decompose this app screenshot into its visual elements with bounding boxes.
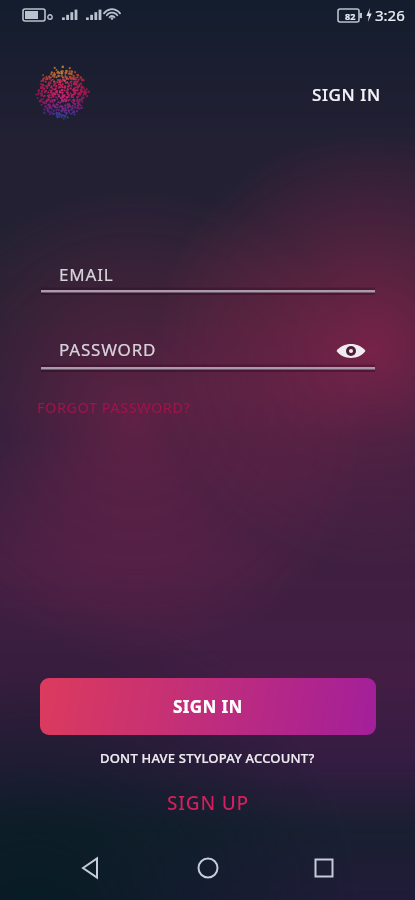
staticText: SIGN IN — [312, 83, 381, 106]
staticText: FORGOT PASSWORD? — [37, 397, 191, 417]
button[interactable]: PASSWORD — [41, 335, 375, 367]
staticText: 3:26 — [375, 5, 405, 25]
button[interactable]: EMAIL — [41, 260, 375, 292]
staticText: 82 — [345, 10, 356, 22]
button[interactable]: Recent apps — [299, 843, 349, 893]
staticText: PASSWORD — [59, 338, 157, 361]
button[interactable]: SIGN IN — [40, 678, 376, 735]
staticText: EMAIL — [59, 263, 114, 286]
button[interactable]: FORGOT PASSWORD? — [37, 397, 191, 417]
staticText: SIGN IN — [173, 695, 243, 718]
button[interactable]: SIGN UP — [167, 790, 249, 816]
staticText: DONT HAVE STYLOPAY ACCOUNT? — [100, 749, 315, 767]
button[interactable]: Home — [183, 843, 233, 893]
button[interactable]: Show password — [334, 334, 368, 368]
button[interactable]: Back — [66, 843, 116, 893]
button[interactable]: SIGN IN — [312, 83, 381, 106]
staticText: SIGN UP — [167, 790, 249, 816]
